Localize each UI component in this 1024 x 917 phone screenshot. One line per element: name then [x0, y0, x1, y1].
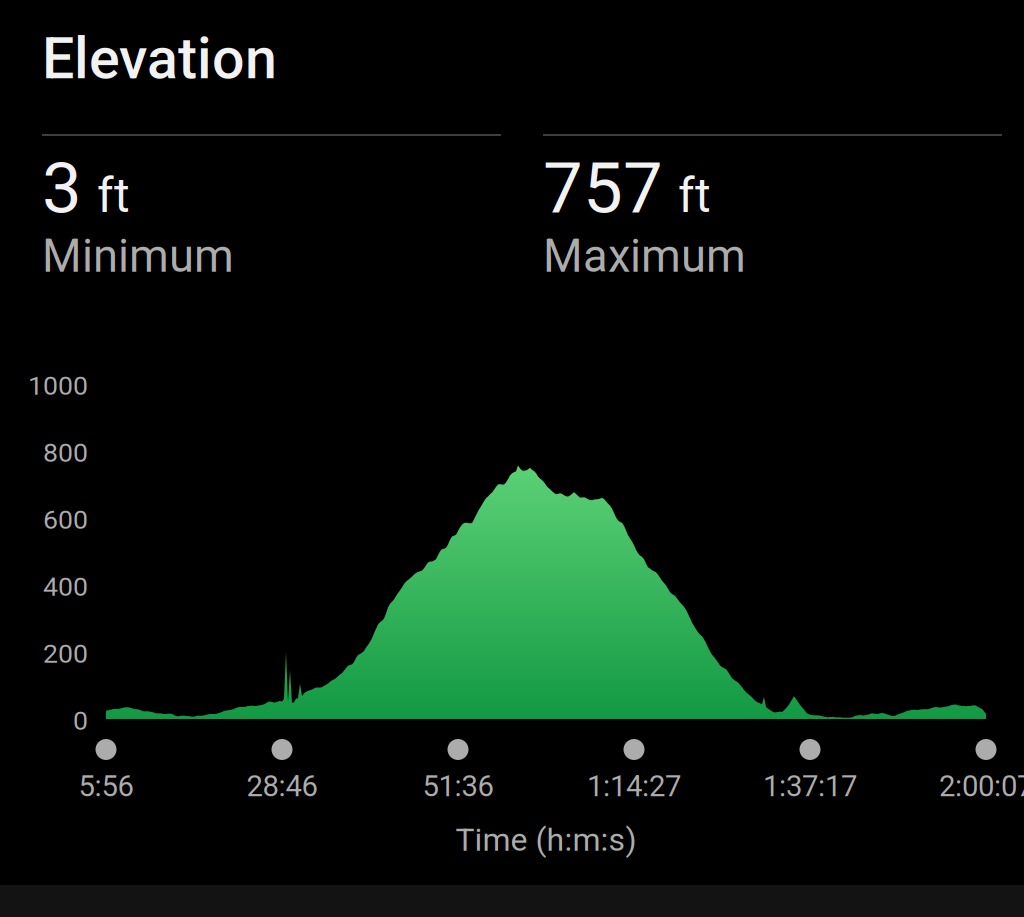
staticText: 400: [43, 571, 88, 602]
staticText: 800: [43, 437, 88, 468]
staticText: 1:37:17: [763, 769, 857, 803]
staticText: Elevation: [42, 25, 277, 92]
staticText: 600: [43, 504, 88, 535]
staticText: Minimum: [42, 230, 234, 283]
staticText: ft: [97, 168, 130, 224]
button[interactable]: 757: [543, 134, 1002, 283]
staticText: 1000: [28, 370, 88, 401]
staticText: 757: [543, 147, 663, 230]
staticText: Maximum: [543, 230, 746, 283]
staticText: Time (h:m:s): [455, 821, 636, 858]
button[interactable]: Elevation profile chart: [106, 384, 986, 719]
staticText: 1:14:27: [587, 769, 681, 803]
staticText: 200: [43, 638, 88, 669]
staticText: ft: [678, 168, 711, 224]
staticText: 28:46: [246, 769, 317, 803]
staticText: 0: [73, 705, 88, 736]
staticText: 51:36: [422, 769, 493, 803]
staticText: 3: [42, 147, 82, 230]
button[interactable]: 3: [42, 134, 501, 283]
staticText: 5:56: [78, 769, 133, 803]
staticText: 2:00:07: [939, 769, 1024, 803]
